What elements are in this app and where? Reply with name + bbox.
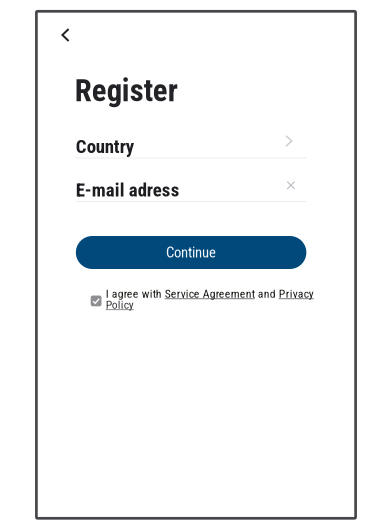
staticText: Register bbox=[75, 73, 178, 109]
staticText: Continue bbox=[166, 244, 216, 261]
staticText: Policy bbox=[106, 298, 134, 312]
button[interactable]: Country bbox=[76, 133, 306, 159]
staticText: E-mail adress bbox=[76, 179, 180, 201]
button[interactable]: Continue bbox=[76, 236, 306, 269]
button[interactable]: E-mail adress bbox=[76, 177, 306, 203]
staticText: Country bbox=[76, 135, 134, 157]
button[interactable]: Back bbox=[50, 20, 80, 50]
staticText: I agree with Service Agreement and Priva… bbox=[106, 287, 314, 301]
button[interactable]: Agree to Service Agreement and Privacy P… bbox=[91, 287, 101, 306]
